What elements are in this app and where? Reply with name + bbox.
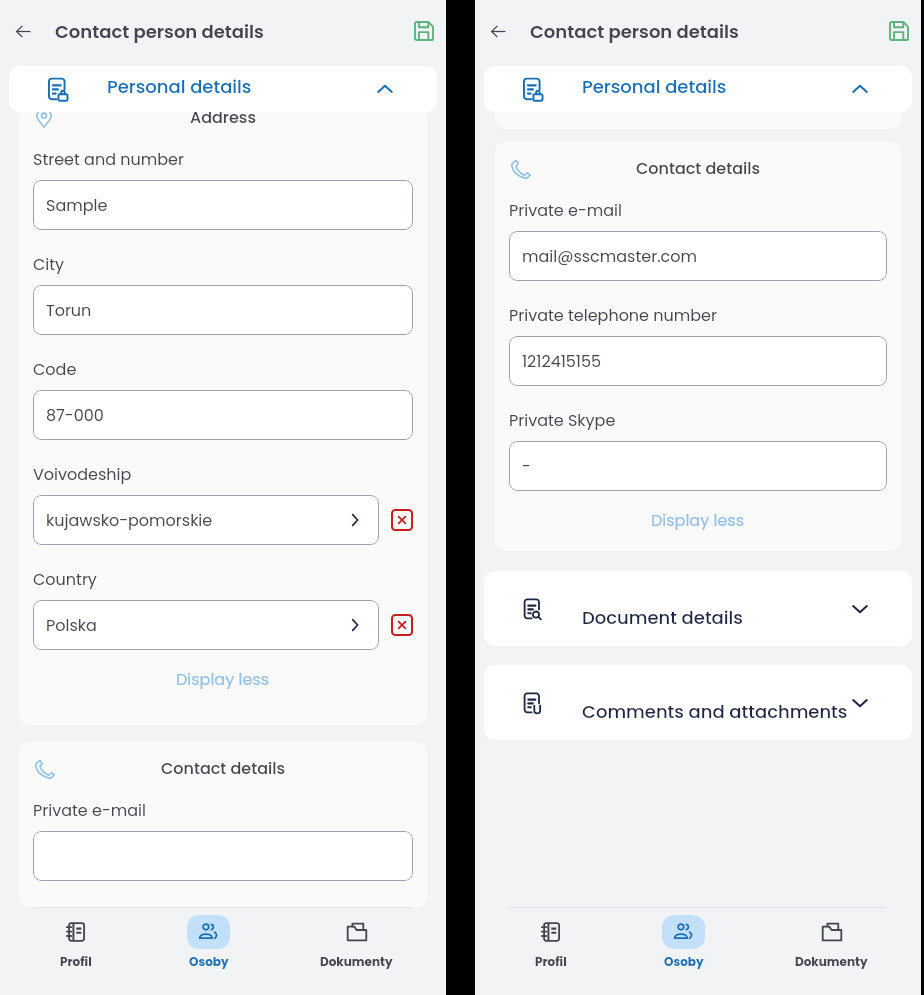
- staticText: Display less: [176, 667, 270, 691]
- staticText: Osoby: [189, 954, 229, 971]
- button[interactable]: -: [509, 441, 887, 491]
- staticText: Personal details: [582, 74, 727, 99]
- button[interactable]: Profil: [54, 915, 97, 971]
- staticText: Dokumenty: [320, 954, 393, 971]
- staticText: City: [33, 252, 65, 276]
- staticText: -: [522, 454, 531, 478]
- staticText: Torun: [46, 298, 92, 322]
- staticText: Personal details: [107, 74, 252, 99]
- button[interactable]: Document details: [484, 571, 912, 646]
- staticText: Display less: [651, 508, 745, 532]
- staticText: Document details: [582, 605, 743, 630]
- staticText: Code: [33, 357, 77, 381]
- staticText: Private e-mail: [33, 798, 146, 822]
- staticText: Private Skype: [509, 408, 616, 432]
- button[interactable]: Back: [479, 12, 517, 50]
- staticText: Osoby: [664, 954, 704, 971]
- staticText: Sample: [46, 193, 108, 217]
- staticText: Voivodeship: [33, 462, 132, 486]
- button[interactable]: [33, 831, 413, 881]
- button[interactable]: Back: [4, 12, 42, 50]
- button[interactable]: Display less: [509, 503, 887, 537]
- staticText: Contact person details: [530, 18, 880, 45]
- button[interactable]: Sample: [33, 180, 413, 230]
- staticText: Dokumenty: [795, 954, 868, 971]
- button[interactable]: Polska: [33, 600, 379, 650]
- staticText: Private e-mail: [509, 198, 622, 222]
- staticText: kujawsko-pomorskie: [46, 508, 346, 532]
- button[interactable]: kujawsko-pomorskie: [33, 495, 379, 545]
- button[interactable]: Profil: [529, 915, 572, 971]
- button[interactable]: Comments and attachments: [484, 665, 912, 740]
- button[interactable]: Dokumenty: [795, 915, 868, 971]
- button[interactable]: Osoby: [187, 915, 230, 971]
- button[interactable]: Osoby: [662, 915, 705, 971]
- button[interactable]: Clear: [391, 509, 413, 531]
- button[interactable]: mail@sscmaster.com: [509, 231, 887, 281]
- staticText: Comments and attachments: [582, 699, 848, 724]
- staticText: Contact details: [636, 158, 760, 180]
- button[interactable]: Personal details: [484, 66, 912, 112]
- button[interactable]: Save: [880, 12, 918, 50]
- button[interactable]: 1212415155: [509, 336, 887, 386]
- button[interactable]: Clear: [391, 614, 413, 636]
- button[interactable]: Torun: [33, 285, 413, 335]
- button[interactable]: 87-000: [33, 390, 413, 440]
- button[interactable]: Personal details: [9, 66, 437, 112]
- staticText: Street and number: [33, 147, 184, 171]
- staticText: Contact details: [161, 758, 285, 780]
- staticText: Profil: [535, 954, 567, 971]
- staticText: Private telephone number: [509, 303, 717, 327]
- staticText: Contact person details: [55, 18, 405, 45]
- staticText: Profil: [60, 954, 92, 971]
- button[interactable]: Display less: [33, 662, 413, 696]
- staticText: Country: [33, 567, 97, 591]
- staticText: 87-000: [46, 403, 104, 427]
- staticText: Polska: [46, 613, 346, 637]
- staticText: 1212415155: [522, 349, 602, 373]
- button[interactable]: Dokumenty: [320, 915, 393, 971]
- staticText: Address: [190, 107, 256, 129]
- staticText: mail@sscmaster.com: [522, 244, 697, 268]
- button[interactable]: Save: [405, 12, 443, 50]
